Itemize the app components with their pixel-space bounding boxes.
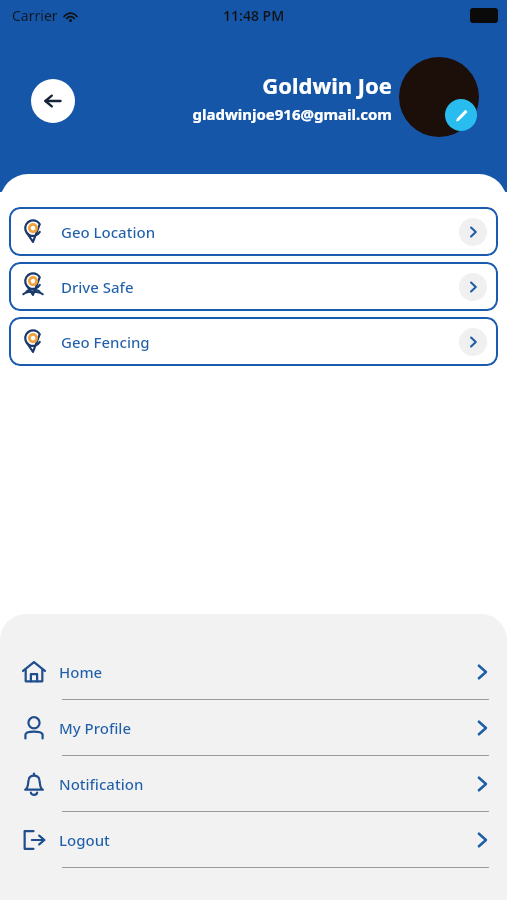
staticText: Carrier	[12, 6, 58, 25]
button[interactable]: Drive Safe	[9, 262, 498, 311]
staticText: Logout	[59, 830, 110, 850]
button[interactable]: Logout	[0, 812, 507, 868]
staticText: Notification	[59, 774, 144, 794]
button[interactable]: Geo Location	[9, 207, 498, 256]
button[interactable]: Home	[0, 644, 507, 700]
staticText: 11:48 PM	[223, 6, 285, 25]
staticText: gladwinjoe916@gmail.com	[192, 104, 392, 124]
button[interactable]: Notification	[0, 756, 507, 812]
staticText: My Profile	[59, 718, 132, 738]
button[interactable]: Back	[31, 79, 75, 123]
staticText: Drive Safe	[61, 277, 134, 297]
staticText: Goldwin Joe	[262, 70, 392, 100]
staticText: Geo Fencing	[61, 332, 150, 352]
staticText: Home	[59, 662, 103, 682]
button[interactable]: Edit profile photo	[445, 99, 477, 131]
button[interactable]: Geo Fencing	[9, 317, 498, 366]
button[interactable]: My Profile	[0, 700, 507, 756]
button[interactable]: Profile photo	[399, 57, 479, 137]
staticText: Geo Location	[61, 222, 156, 242]
